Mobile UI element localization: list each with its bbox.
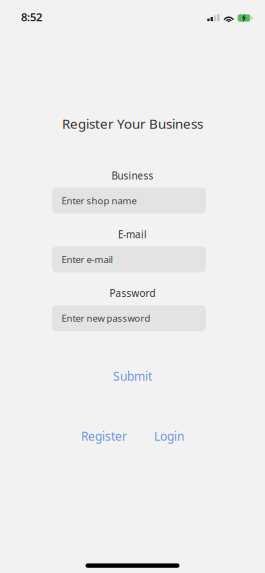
staticText: E-mail (118, 228, 147, 241)
staticText: Register (81, 428, 127, 444)
staticText: 8:52 (21, 9, 42, 24)
button[interactable]: Enter new password (52, 305, 206, 331)
staticText: Enter e-mail (61, 253, 112, 266)
staticText: Enter new password (61, 312, 150, 325)
staticText: Submit (113, 368, 152, 384)
button[interactable]: Submit (113, 370, 152, 382)
staticText: Login (154, 428, 184, 444)
staticText: Business (111, 169, 153, 182)
button[interactable]: Enter e-mail (52, 246, 206, 272)
staticText: Enter shop name (61, 194, 136, 207)
button[interactable]: Login (154, 430, 184, 442)
button[interactable]: Register (81, 430, 127, 442)
staticText: Password (109, 286, 155, 300)
button[interactable]: Enter shop name (52, 188, 206, 214)
staticText: Register Your Business (62, 114, 203, 133)
